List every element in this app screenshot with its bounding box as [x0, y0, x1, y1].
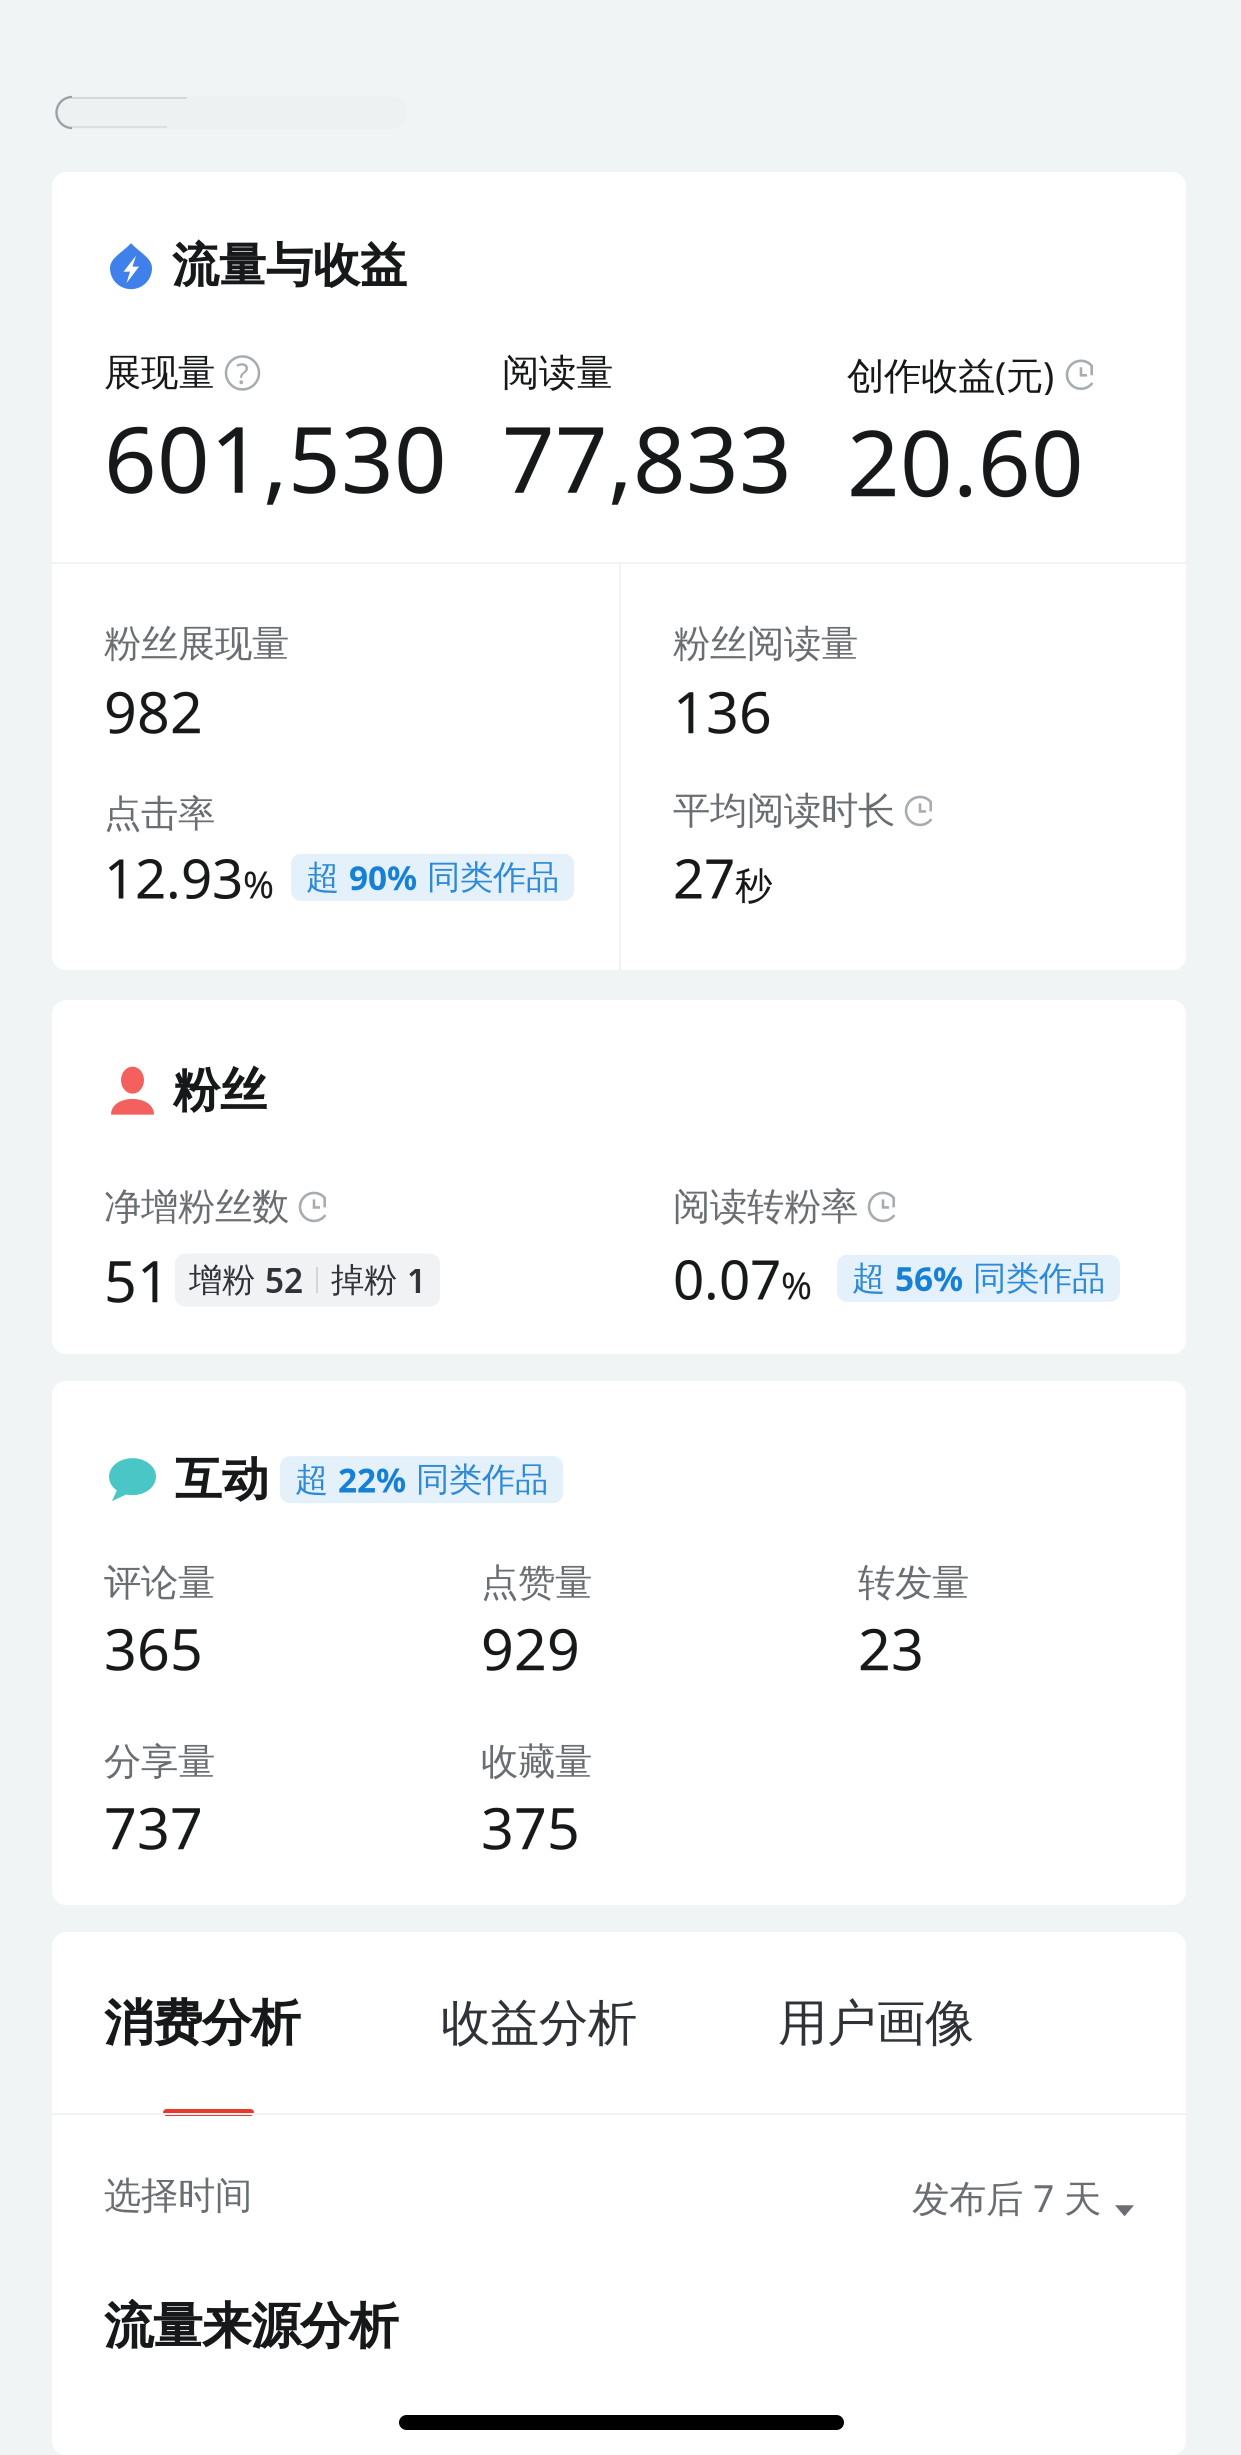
staticText: 22%: [338, 1457, 406, 1502]
staticText: 375: [481, 1789, 580, 1865]
staticText: 用户画像: [778, 1993, 974, 2054]
button[interactable]: 发布后 7 天: [912, 2173, 1134, 2223]
staticText: 创作收益(元): [847, 350, 1054, 400]
staticText: 136: [673, 673, 772, 749]
staticText: 消费分析: [104, 1993, 300, 2054]
button[interactable]: 超: [837, 1255, 1120, 1302]
staticText: 同类作品: [417, 857, 559, 898]
button[interactable]: What is this metric?: [226, 356, 259, 389]
staticText: %: [781, 1260, 812, 1310]
staticText: 秒: [735, 863, 772, 909]
staticText: 20.60: [847, 400, 1084, 522]
button[interactable]: 收益分析: [441, 1993, 778, 2113]
staticText: 12.93: [104, 841, 243, 914]
staticText: 选择时间: [104, 2173, 252, 2219]
staticText: 分享量: [104, 1739, 215, 1785]
staticText: 超: [852, 1258, 895, 1299]
staticText: 23: [858, 1610, 924, 1686]
staticText: 点赞量: [481, 1560, 592, 1606]
button[interactable]: 用户画像: [778, 1993, 1115, 2113]
staticText: 净增粉丝数: [104, 1184, 289, 1230]
staticText: 增粉: [189, 1260, 265, 1300]
button[interactable]: 超: [291, 854, 574, 901]
staticText: 超: [306, 857, 349, 898]
staticText: 展现量: [104, 350, 215, 396]
staticText: 52: [265, 1258, 303, 1302]
staticText: 阅读量: [502, 350, 613, 396]
staticText: 流量与收益: [172, 237, 407, 294]
staticText: 27: [673, 841, 735, 914]
staticText: 601,530: [104, 396, 447, 518]
staticText: 粉丝展现量: [104, 621, 289, 667]
staticText: 粉丝: [173, 1062, 267, 1119]
staticText: 737: [104, 1789, 203, 1865]
button[interactable]: Historical data: [298, 1190, 331, 1224]
staticText: 77,833: [502, 396, 792, 518]
staticText: 发布后 7 天: [912, 2173, 1101, 2223]
staticText: 同类作品: [406, 1459, 548, 1500]
button[interactable]: Historical data: [1065, 358, 1098, 392]
staticText: 收益分析: [441, 1993, 637, 2054]
button[interactable]: Historical data: [904, 794, 937, 828]
staticText: 互动: [175, 1451, 269, 1508]
staticText: 评论量: [104, 1560, 215, 1606]
staticText: 阅读转粉率: [673, 1184, 858, 1230]
staticText: 0.07: [673, 1242, 781, 1315]
staticText: 51: [104, 1242, 170, 1318]
staticText: 平均阅读时长: [673, 788, 895, 834]
staticText: 982: [104, 673, 203, 749]
staticText: 同类作品: [963, 1258, 1105, 1299]
staticText: 超: [295, 1459, 338, 1500]
staticText: 365: [104, 1610, 203, 1686]
staticText: 粉丝阅读量: [673, 621, 858, 667]
staticText: 90%: [349, 855, 417, 899]
staticText: ?: [236, 353, 249, 392]
staticText: 转发量: [858, 1560, 969, 1606]
staticText: 收藏量: [481, 1739, 592, 1785]
button[interactable]: 消费分析: [104, 1993, 441, 2113]
staticText: 流量来源分析: [104, 2296, 398, 2357]
button[interactable]: 超: [280, 1456, 563, 1503]
staticText: 1: [407, 1258, 426, 1302]
staticText: 点击率: [104, 791, 215, 837]
staticText: %: [243, 859, 274, 909]
staticText: 掉粉: [331, 1260, 407, 1300]
staticText: 56%: [895, 1256, 963, 1300]
button[interactable]: Historical data: [867, 1190, 900, 1224]
staticText: 929: [481, 1610, 580, 1686]
